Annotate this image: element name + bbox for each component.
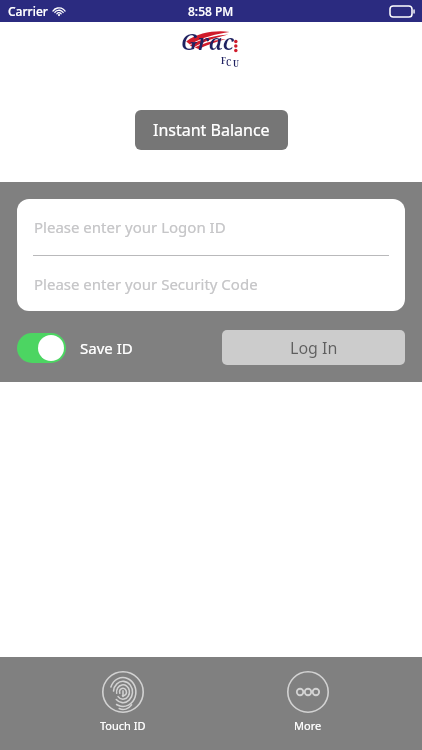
staticText: U [233,58,239,69]
button[interactable]: More [283,671,333,733]
other: Save ID toggle [17,333,66,363]
staticText: Instant Balance [153,119,270,141]
button[interactable]: Log In [222,330,405,365]
staticText: Please enter your Logon ID [34,217,226,237]
staticText: Graco [181,26,243,64]
button[interactable]: Please enter your Logon ID [17,199,405,255]
staticText: Log In [290,337,338,359]
button[interactable]: Please enter your Security Code [17,256,405,311]
staticText: F [221,55,226,66]
staticText: C [226,57,232,68]
staticText: Carrier [8,3,48,19]
button[interactable]: Save ID toggle [17,333,133,363]
button[interactable]: Instant Balance [135,110,288,150]
staticText: Save ID [80,338,133,358]
button[interactable]: Touch ID [96,671,150,733]
staticText: Touch ID [100,718,146,733]
staticText: Please enter your Security Code [34,274,258,294]
staticText: More [294,718,322,733]
staticText: 8:58 PM [188,3,234,19]
